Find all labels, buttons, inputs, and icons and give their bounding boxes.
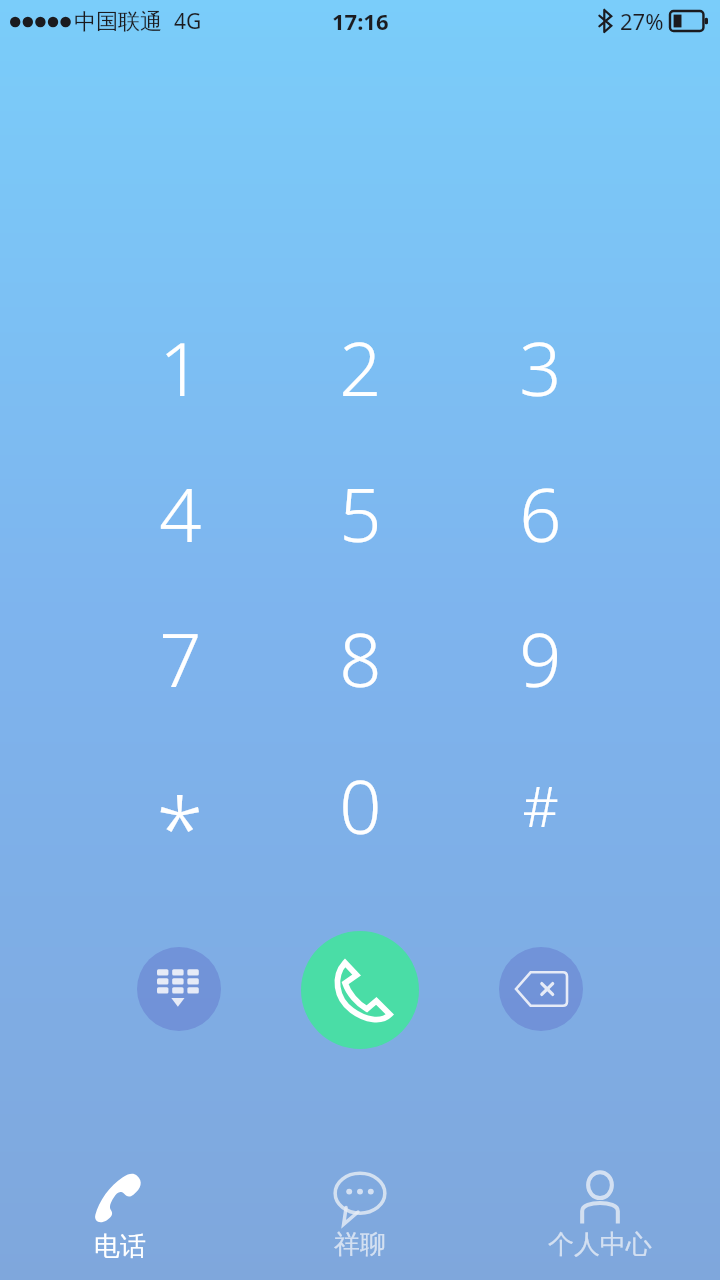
button[interactable]: Call xyxy=(301,931,419,1049)
button[interactable]: 6 xyxy=(460,447,620,579)
button[interactable]: Hide keypad xyxy=(137,947,221,1031)
staticText: 9 xyxy=(519,608,562,709)
button[interactable]: 5 xyxy=(280,447,440,579)
staticText: 2 xyxy=(339,317,382,418)
button[interactable]: 3 xyxy=(460,301,620,433)
staticText: 8 xyxy=(339,608,382,709)
staticText: 电话 xyxy=(94,1230,146,1263)
staticText: 中国联通 xyxy=(74,8,162,36)
staticText: 0 xyxy=(339,755,382,856)
staticText: 4G xyxy=(174,7,202,36)
button[interactable]: 7 xyxy=(100,592,260,724)
button[interactable]: 0 xyxy=(280,739,440,871)
staticText: 3 xyxy=(519,317,562,418)
staticText: 27% xyxy=(620,6,664,36)
button[interactable]: 1 xyxy=(100,301,260,433)
button[interactable]: 2 xyxy=(280,301,440,433)
staticText: * xyxy=(156,769,204,886)
staticText: # xyxy=(522,767,559,843)
button[interactable]: 9 xyxy=(460,592,620,724)
button[interactable]: 个人中心 xyxy=(480,1162,720,1280)
button[interactable]: 电话 xyxy=(0,1162,240,1280)
staticText: 5 xyxy=(339,463,382,564)
button[interactable]: 祥聊 xyxy=(240,1162,480,1280)
button[interactable]: 4 xyxy=(100,447,260,579)
button[interactable]: * xyxy=(100,739,260,871)
staticText: 7 xyxy=(159,608,202,709)
staticText: 4 xyxy=(159,463,202,564)
staticText: 1 xyxy=(159,317,202,418)
button[interactable]: 8 xyxy=(280,592,440,724)
staticText: 17:16 xyxy=(332,6,389,36)
staticText: 6 xyxy=(519,463,562,564)
staticText: 祥聊 xyxy=(334,1228,386,1261)
button[interactable]: Delete xyxy=(499,947,583,1031)
button[interactable]: # xyxy=(460,739,620,871)
staticText: 个人中心 xyxy=(548,1228,652,1261)
